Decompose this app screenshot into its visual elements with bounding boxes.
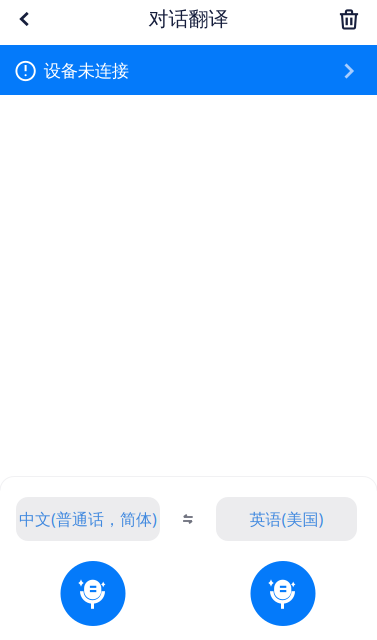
staticText: 中文(普通话，简体)	[19, 508, 157, 530]
staticText: 英语(美国)	[249, 508, 323, 530]
button[interactable]: Swap languages	[168, 499, 208, 539]
staticText: 对话翻译	[148, 7, 228, 31]
button[interactable]: 中文(普通话，简体)	[16, 497, 160, 541]
button[interactable]: Speak Chinese	[60, 561, 125, 626]
staticText: 设备未连接	[44, 60, 129, 82]
button[interactable]: 设备未连接	[0, 45, 377, 95]
button[interactable]: Speak English	[250, 561, 315, 626]
button[interactable]: Delete conversation	[327, 0, 371, 38]
button[interactable]: Back	[2, 0, 46, 38]
button[interactable]: 英语(美国)	[216, 497, 357, 541]
